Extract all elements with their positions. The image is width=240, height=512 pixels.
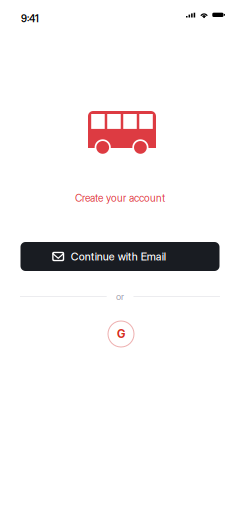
staticText: Continue with Email xyxy=(71,250,166,263)
staticText: or xyxy=(116,291,124,302)
button[interactable]: Continue with Google xyxy=(108,321,134,347)
button[interactable]: Continue with Email xyxy=(20,242,219,271)
staticText: Create your account xyxy=(75,192,165,204)
staticText: 9:41 xyxy=(21,13,39,24)
staticText: G xyxy=(117,327,125,341)
